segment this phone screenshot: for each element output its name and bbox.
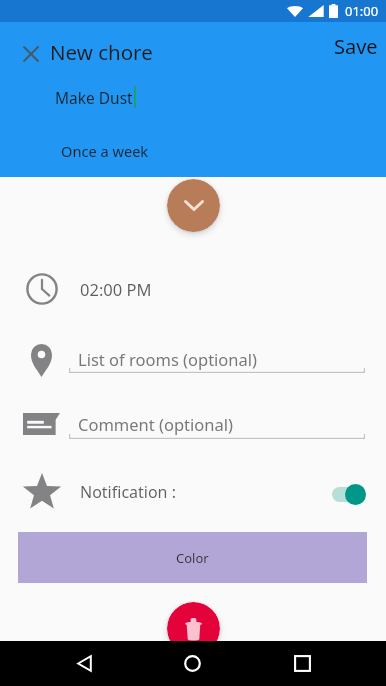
button[interactable]: Recents xyxy=(280,641,325,686)
staticText: Once a week xyxy=(61,141,149,161)
button[interactable]: 02:00 PM xyxy=(0,263,386,315)
button[interactable]: Expand xyxy=(167,179,220,232)
staticText: Color xyxy=(176,549,209,567)
staticText: New chore xyxy=(50,38,153,66)
button[interactable]: Delete xyxy=(167,602,220,655)
staticText: Save xyxy=(334,33,378,60)
button[interactable]: Close xyxy=(16,39,45,68)
button[interactable]: Back xyxy=(62,641,107,686)
staticText: 02:00 PM xyxy=(80,278,152,300)
button[interactable]: Notification toggle xyxy=(327,480,371,508)
button[interactable]: Save xyxy=(334,32,378,60)
staticText: 01:00 xyxy=(345,2,379,20)
staticText: List of rooms (optional) xyxy=(78,348,258,370)
button[interactable]: Color xyxy=(18,532,367,583)
button[interactable]: Once a week xyxy=(61,140,149,162)
staticText: Make Dust xyxy=(55,87,133,108)
button[interactable]: Home xyxy=(170,641,215,686)
staticText: Notification : xyxy=(80,481,176,503)
staticText: Comment (optional) xyxy=(78,413,233,435)
